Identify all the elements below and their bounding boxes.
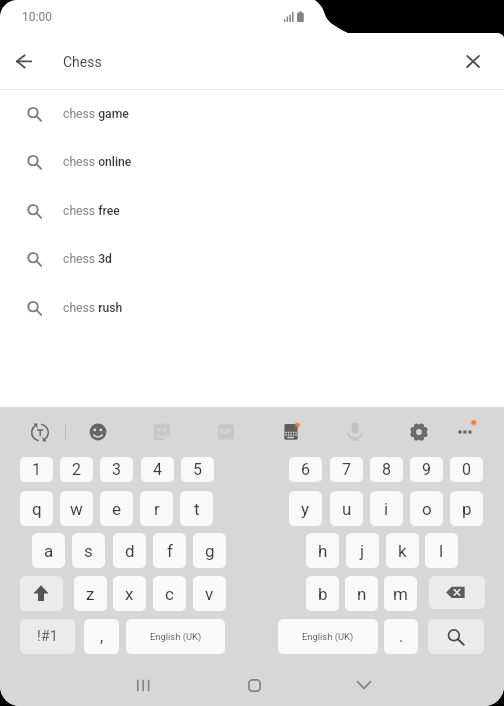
button[interactable]: !#1 [20,619,75,654]
button[interactable]: 4 [141,457,174,482]
button[interactable]: 5 [181,457,214,482]
button[interactable]: Backspace [429,576,485,609]
staticText: m [393,584,408,604]
button[interactable]: n [345,576,378,611]
button[interactable]: x [113,576,146,611]
button[interactable]: chess free [0,187,504,235]
button[interactable]: Back [4,42,44,82]
button[interactable]: 3 [100,457,133,482]
button[interactable]: chess 3d [0,235,504,283]
staticText: 3 [112,460,121,479]
button[interactable]: Emoji [81,415,115,449]
button[interactable]: Clear search [453,42,493,82]
staticText: b [318,584,328,604]
button[interactable]: m [384,576,417,611]
button[interactable]: p [450,491,483,526]
button[interactable]: v [193,576,226,611]
button[interactable]: r [140,491,173,526]
staticText: o [422,499,432,519]
button[interactable]: 1 [20,457,53,482]
button[interactable]: Voice input [338,415,372,449]
button[interactable]: g [193,533,226,568]
button[interactable]: h [306,533,339,568]
button[interactable]: Settings [402,415,436,449]
button[interactable]: chess online [0,138,504,186]
button[interactable]: f [153,533,186,568]
staticText: Chess [63,54,102,70]
button[interactable]: t [180,491,213,526]
button[interactable]: More options [448,415,482,449]
button[interactable]: e [100,491,133,526]
button[interactable]: y [289,491,322,526]
staticText: t [194,499,200,519]
button[interactable]: Stickers [145,415,179,449]
button[interactable]: 2 [60,457,93,482]
staticText: English (UK) [150,631,202,642]
button[interactable]: w [60,491,93,526]
staticText: a [44,541,54,561]
button[interactable]: q [20,491,53,526]
button[interactable]: j [346,533,379,568]
button[interactable]: l [425,533,458,568]
button[interactable]: 8 [370,457,403,482]
staticText: chess rush [63,301,123,315]
button[interactable]: chess game [0,90,504,138]
button[interactable]: English (UK) [126,619,225,654]
staticText: GIF [220,427,232,436]
staticText: chess 3d [63,252,112,266]
staticText: 7 [342,460,351,479]
button[interactable]: , [84,619,119,654]
button[interactable]: . [384,619,418,654]
button[interactable]: Recent apps [119,661,167,706]
staticText: v [205,584,214,604]
staticText: z [86,584,95,604]
button[interactable]: Shift [20,576,63,611]
staticText: h [318,541,328,561]
staticText: chess online [63,155,132,169]
staticText: s [84,541,93,561]
staticText: 8 [382,460,391,479]
staticText: p [462,499,472,519]
staticText: 6 [301,460,310,479]
staticText: f [167,541,173,561]
button[interactable]: b [306,576,339,611]
staticText: chess game [63,107,129,121]
button[interactable]: 9 [410,457,443,482]
staticText: . [399,627,404,646]
button[interactable]: Keyboard layout [274,415,308,449]
button[interactable]: Search [428,619,484,654]
staticText: j [360,541,365,561]
button[interactable]: 7 [330,457,363,482]
button[interactable]: a [32,533,65,568]
staticText: e [112,499,122,519]
staticText: x [125,584,134,604]
button[interactable]: i [370,491,403,526]
button[interactable]: GIF [209,415,243,449]
button[interactable]: Hide keyboard [340,661,388,706]
staticText: q [32,499,42,519]
staticText: l [439,541,444,561]
button[interactable]: c [153,576,186,611]
staticText: 0 [462,460,471,479]
button[interactable]: 6 [289,457,322,482]
button[interactable]: k [386,533,419,568]
staticText: r [154,499,160,519]
button[interactable]: z [74,576,107,611]
staticText: d [125,541,135,561]
button[interactable]: Home [230,661,278,706]
button[interactable]: English (UK) [278,619,378,654]
staticText: 9 [422,460,431,479]
button[interactable]: s [72,533,105,568]
button[interactable]: chess rush [0,284,504,332]
button[interactable]: d [113,533,146,568]
button[interactable]: o [410,491,443,526]
button[interactable]: 0 [450,457,483,482]
staticText: 2 [72,460,81,479]
staticText: y [301,499,310,519]
button[interactable]: u [330,491,363,526]
staticText: w [70,499,83,519]
button[interactable]: Translate [23,415,57,449]
staticText: u [342,499,352,519]
staticText: g [205,541,215,561]
staticText: chess free [63,204,120,218]
